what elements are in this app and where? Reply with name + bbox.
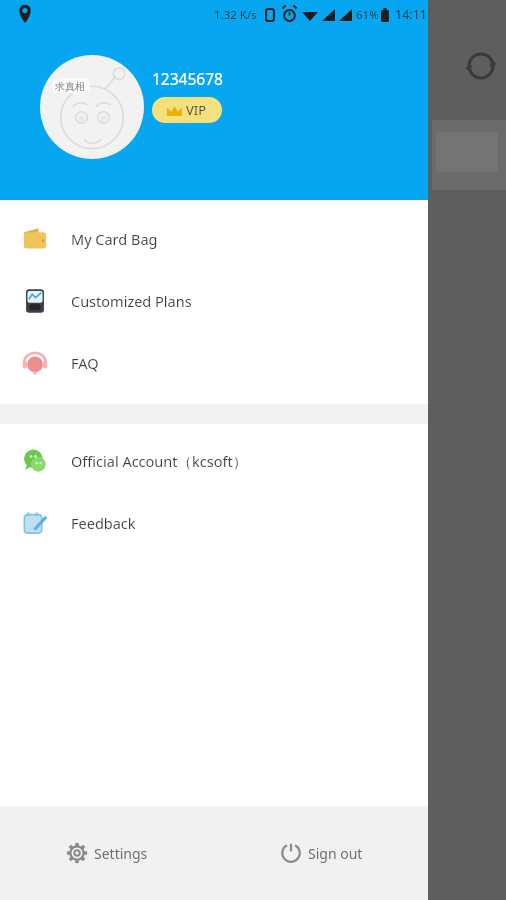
button[interactable]: Settings [0,806,214,900]
staticText: Feedback [71,513,136,533]
button[interactable]: Feedback [0,492,428,554]
button[interactable]: VIP [152,97,222,123]
staticText: VIP [186,101,207,119]
staticText: 12345678 [152,68,223,89]
staticText: 14:11 [395,6,427,23]
staticText: Sign out [308,844,363,863]
staticText: FAQ [71,353,99,373]
staticText: 1.32 K/s [214,7,257,23]
staticText: 61% [356,7,379,23]
staticText: Official Account（kcsoft） [71,451,248,471]
staticText: My Card Bag [71,229,158,249]
staticText: Settings [94,844,148,863]
button[interactable]: Official Account（kcsoft） [0,430,428,492]
button[interactable]: Sign out [214,806,428,900]
button[interactable]: My Card Bag [0,208,428,270]
staticText: Customized Plans [71,291,192,311]
button[interactable]: Customized Plans [0,270,428,332]
staticText: 求真相 [55,80,85,93]
button[interactable]: FAQ [0,332,428,394]
button[interactable]: Profile avatar [40,55,144,159]
